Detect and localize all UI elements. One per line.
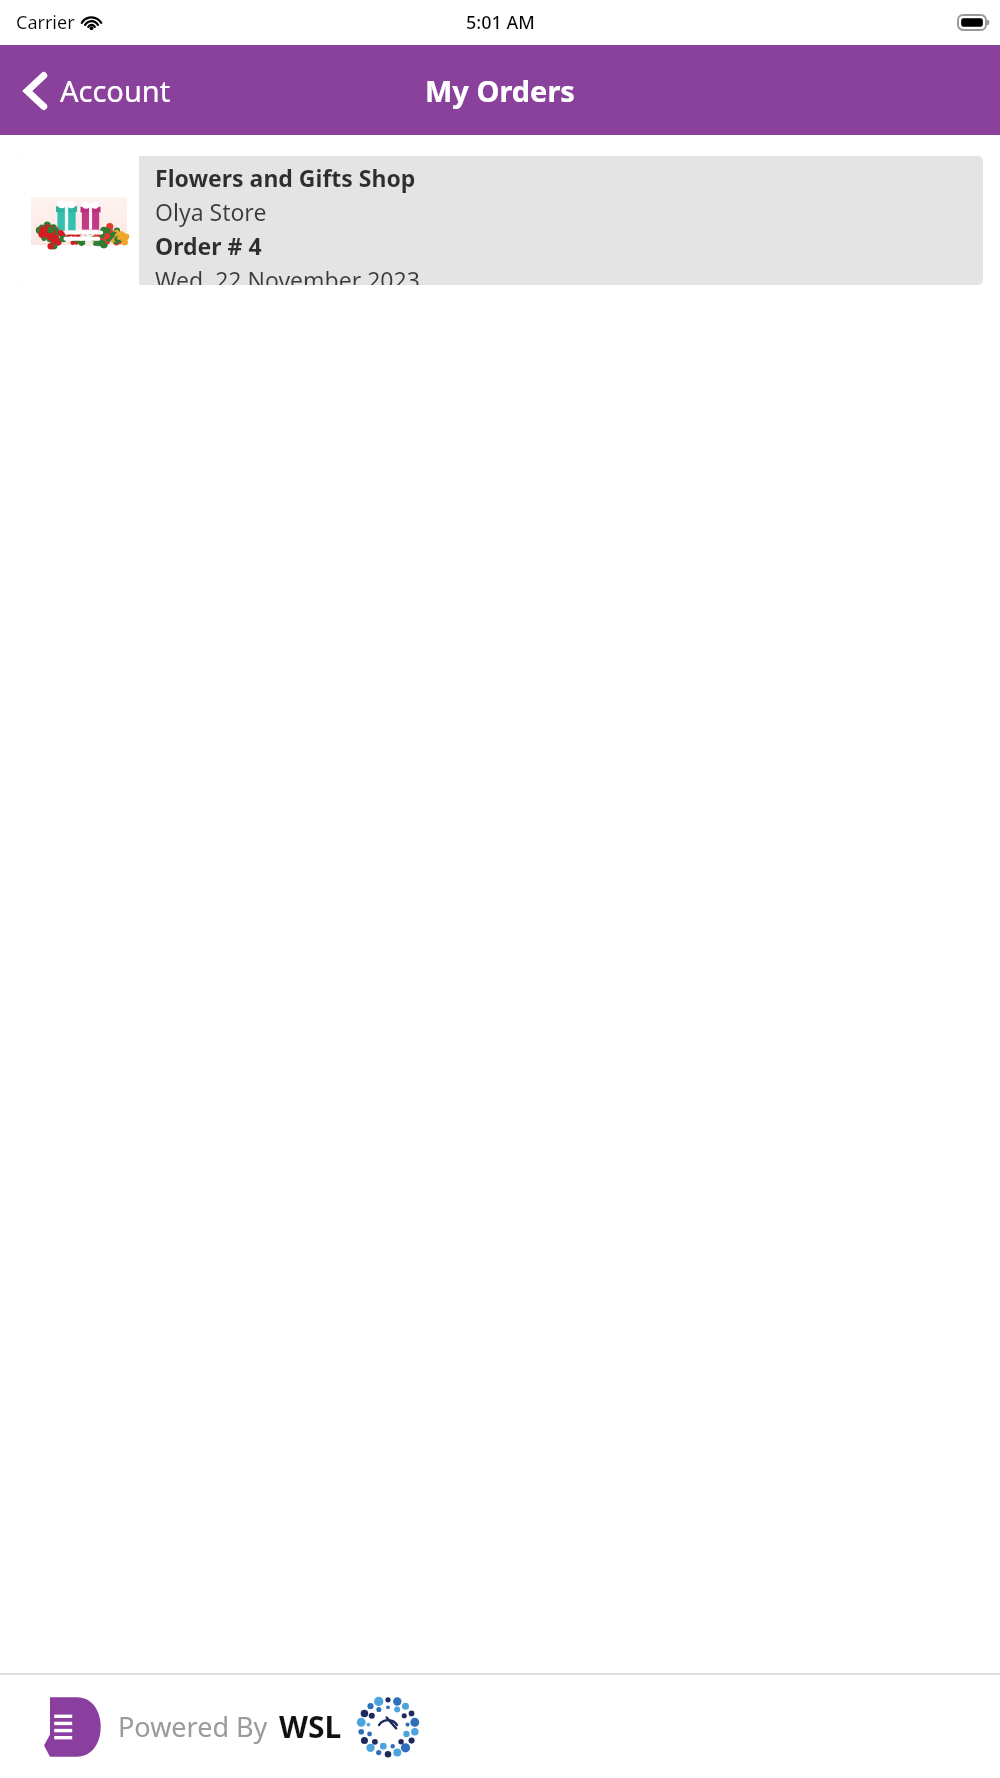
staticText: Account <box>60 71 171 110</box>
staticText: WSL <box>279 1706 342 1747</box>
staticText: 5:01 AM <box>466 10 535 35</box>
staticText: Flowers and Gifts Shop <box>155 162 416 193</box>
staticText: My Orders <box>425 71 575 110</box>
button[interactable]: Flowers and Gifts Shop <box>19 156 983 285</box>
staticText: Olya Store <box>155 196 267 227</box>
staticText: Wed, 22 November 2023 <box>155 264 420 285</box>
staticText: Order # 4 <box>155 230 262 261</box>
staticText: Carrier <box>16 10 75 35</box>
staticText: Powered By <box>118 1708 268 1745</box>
button[interactable]: Back to Account <box>0 61 189 120</box>
